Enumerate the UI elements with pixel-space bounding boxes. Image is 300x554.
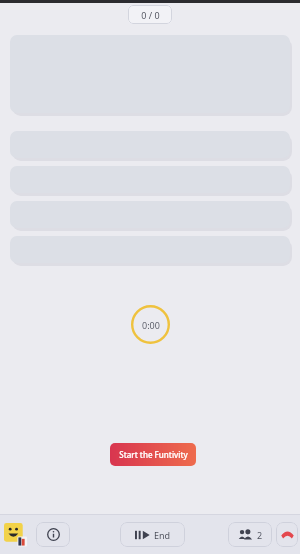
button[interactable]: Information — [36, 522, 70, 547]
button[interactable]: 0 / 0 — [128, 5, 172, 24]
button[interactable]: Start the Funtivity — [110, 443, 196, 466]
button[interactable]: Timer 0:00 — [131, 305, 170, 344]
button[interactable]: End — [120, 522, 185, 547]
staticText: 2 — [257, 529, 263, 541]
button[interactable]: End call — [276, 522, 298, 547]
staticText: Start the Funtivity — [119, 449, 188, 460]
button[interactable]: Reactions — [4, 523, 28, 547]
button[interactable]: 2 — [228, 522, 272, 547]
staticText: 0 / 0 — [141, 9, 160, 21]
staticText: End — [154, 529, 171, 541]
staticText: 0:00 — [142, 319, 160, 331]
